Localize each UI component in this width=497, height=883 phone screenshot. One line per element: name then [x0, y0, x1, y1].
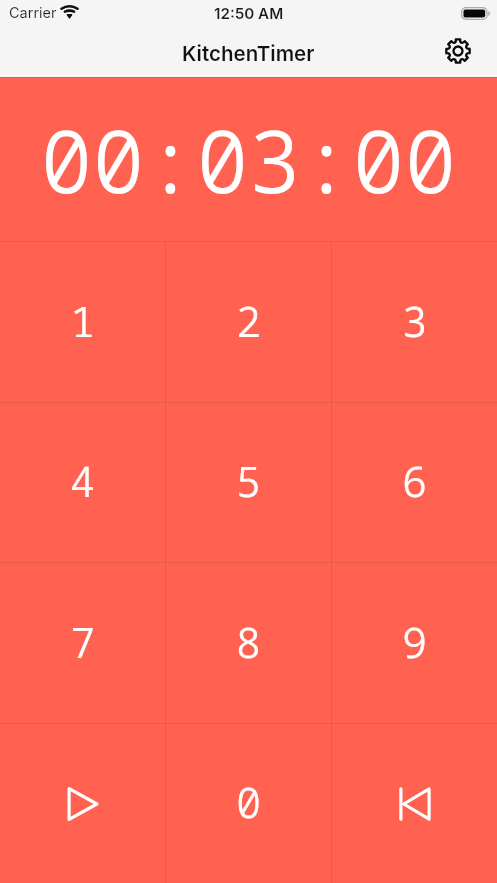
button[interactable]: 3	[332, 242, 497, 402]
button[interactable]: 4	[0, 403, 165, 562]
button[interactable]: 6	[332, 403, 497, 562]
button[interactable]: 7	[0, 563, 165, 723]
button[interactable]: 1	[0, 242, 165, 402]
staticText: 12:50 AM	[214, 4, 284, 22]
staticText: Carrier	[9, 4, 57, 22]
button[interactable]: 0	[166, 724, 331, 883]
staticText: KitchenTimer	[182, 41, 315, 66]
button[interactable]: Settings	[438, 31, 478, 71]
button[interactable]: 2	[166, 242, 331, 402]
button[interactable]: 5	[166, 403, 331, 562]
button[interactable]: 9	[332, 563, 497, 723]
button[interactable]: Start timer	[0, 724, 165, 883]
button[interactable]: Reset timer	[332, 724, 497, 883]
button[interactable]: 8	[166, 563, 331, 723]
